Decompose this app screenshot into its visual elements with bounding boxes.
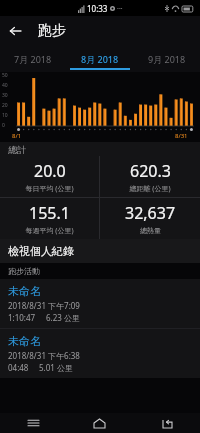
button[interactable]: 155.1 xyxy=(0,198,99,239)
staticText: 8月 2018 xyxy=(81,53,119,65)
staticText: 跑步 xyxy=(38,22,66,40)
staticText: 每週平均 (公里) xyxy=(25,226,74,236)
staticText: 40 xyxy=(2,82,8,89)
button[interactable]: 8月 2018 xyxy=(66,46,133,72)
staticText: 檢視個人紀錄 xyxy=(8,244,74,258)
button[interactable]: 未命名 xyxy=(0,329,200,378)
staticText: 1:10:47 xyxy=(8,312,36,323)
button[interactable]: 620.3 xyxy=(100,156,200,197)
staticText: 10:33 xyxy=(87,3,108,14)
staticText: 6.23 公里 xyxy=(46,312,80,323)
staticText: 20 xyxy=(2,102,8,109)
staticText: 5.01 公里 xyxy=(39,362,73,373)
staticText: 50 xyxy=(2,72,8,79)
staticText: 10 xyxy=(2,112,8,119)
staticText: 20.0 xyxy=(34,160,66,182)
button[interactable]: Back xyxy=(133,413,200,433)
staticText: 總熱量 xyxy=(140,226,161,235)
staticText: 2018/8/31 下午7:09 xyxy=(8,300,80,311)
staticText: 620.3 xyxy=(130,160,171,182)
button[interactable]: 7月 2018 xyxy=(0,46,66,72)
staticText: 9月 2018 xyxy=(148,53,186,65)
staticText: 0 xyxy=(2,122,5,129)
button[interactable]: 20.0 xyxy=(0,156,99,197)
button[interactable]: 未命名 xyxy=(0,279,200,328)
staticText: 7月 2018 xyxy=(14,53,52,65)
staticText: 32,637 xyxy=(125,202,176,224)
button[interactable]: 9月 2018 xyxy=(133,46,200,72)
staticText: 155.1 xyxy=(29,202,70,224)
staticText: 未命名 xyxy=(8,334,41,348)
staticText: ··· xyxy=(117,4,123,14)
staticText: 每日平均 (公里) xyxy=(25,184,74,194)
button[interactable]: 32,637 xyxy=(100,198,200,239)
staticText: 總距離 (公里) xyxy=(129,184,171,194)
staticText: 跑步活動 xyxy=(8,266,40,276)
button[interactable]: Back xyxy=(0,16,30,46)
button[interactable]: Home xyxy=(66,413,133,433)
staticText: 未命名 xyxy=(8,284,41,298)
staticText: 8/31 xyxy=(175,132,188,140)
staticText: 2018/8/31 下午6:38 xyxy=(8,350,80,361)
staticText: 8/1 xyxy=(12,132,22,140)
staticText: 04:48 xyxy=(8,362,29,373)
staticText: 總計 xyxy=(8,144,26,155)
button[interactable]: Recents xyxy=(0,413,66,433)
button[interactable]: 檢視個人紀錄 xyxy=(0,239,200,263)
staticText: 30 xyxy=(2,92,8,99)
